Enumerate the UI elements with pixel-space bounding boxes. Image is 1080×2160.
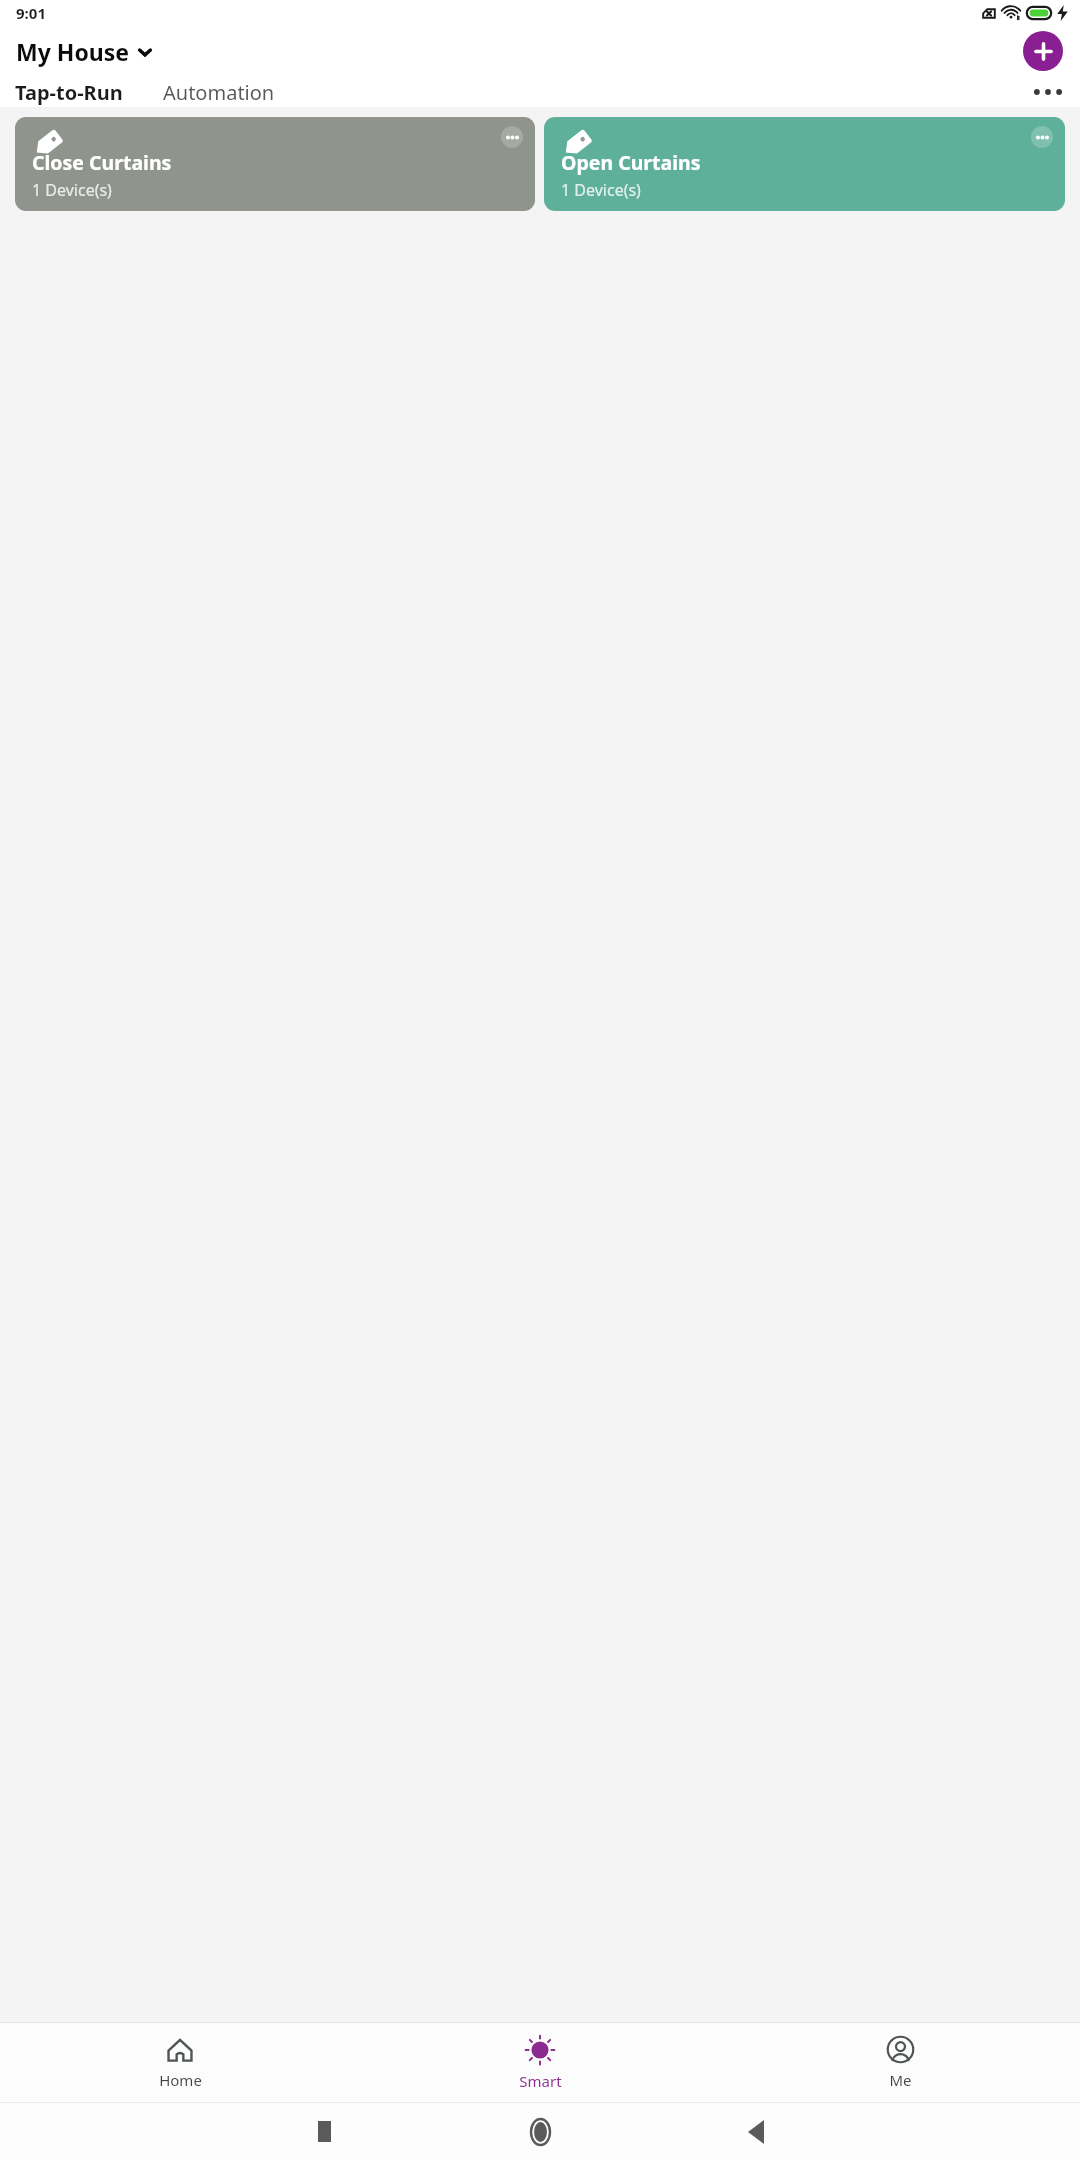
button[interactable]: Scene options bbox=[501, 126, 523, 148]
button[interactable]: Scene options bbox=[1031, 126, 1053, 148]
staticText: 9:01 bbox=[16, 3, 46, 23]
button[interactable]: More options bbox=[1028, 77, 1068, 107]
button[interactable]: Tap-to-Run bbox=[5, 77, 133, 107]
staticText: 1 Device(s) bbox=[32, 179, 112, 201]
staticText: Open Curtains bbox=[561, 149, 701, 176]
button[interactable]: My House bbox=[11, 32, 158, 71]
button[interactable]: Me bbox=[720, 2023, 1080, 2102]
staticText: My House bbox=[16, 36, 129, 67]
button[interactable]: Smart bbox=[360, 2023, 720, 2102]
button[interactable]: Recents bbox=[216, 2103, 432, 2160]
staticText: Close Curtains bbox=[32, 149, 172, 176]
staticText: Home bbox=[159, 2070, 202, 2090]
staticText: 1 Device(s) bbox=[561, 179, 641, 201]
staticText: Automation bbox=[163, 79, 275, 105]
button[interactable]: Home bbox=[0, 2023, 360, 2102]
button[interactable]: Scene options bbox=[15, 117, 535, 211]
button[interactable]: Home bbox=[432, 2103, 648, 2160]
staticText: Smart bbox=[519, 2071, 562, 2091]
staticText: Me bbox=[889, 2070, 912, 2090]
staticText: Tap-to-Run bbox=[15, 79, 123, 105]
button[interactable]: Automation bbox=[155, 77, 283, 107]
button[interactable]: Back bbox=[648, 2103, 864, 2160]
button[interactable]: Scene options bbox=[544, 117, 1065, 211]
button[interactable]: Add bbox=[1023, 31, 1063, 71]
